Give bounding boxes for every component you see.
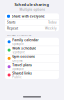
staticText: Public [12, 75, 21, 79]
staticText: Today [48, 20, 57, 24]
staticText: Only me [12, 59, 22, 62]
staticText: Schedule sharing [14, 2, 49, 7]
button[interactable]: Travel plans [5, 63, 59, 71]
staticText: Gym sessions [12, 54, 35, 59]
button[interactable]: Starts [5, 19, 59, 25]
staticText: Weekly [45, 26, 57, 30]
button[interactable]: Gym sessions [5, 54, 59, 62]
button[interactable]: Work schedule [5, 46, 59, 54]
staticText: Multiple options [19, 7, 44, 12]
staticText: SHARED CALENDARS [7, 33, 31, 37]
staticText: Travel plans [12, 63, 32, 67]
staticText: Share with everyone [12, 14, 45, 18]
button[interactable]: Share with everyone [5, 13, 59, 19]
staticText: Starts [7, 20, 15, 24]
staticText: Work schedule [12, 46, 36, 50]
staticText: Family calendar [12, 38, 38, 42]
button[interactable]: Shared links [5, 71, 59, 79]
button[interactable]: Family calendar [5, 38, 59, 46]
staticText: 12 people [12, 51, 24, 54]
staticText: Repeat [7, 26, 18, 30]
staticText: 3 people [12, 67, 23, 71]
staticText: 5 people [12, 42, 23, 46]
staticText: Shared links [12, 71, 32, 75]
button[interactable]: Repeat [5, 25, 59, 31]
